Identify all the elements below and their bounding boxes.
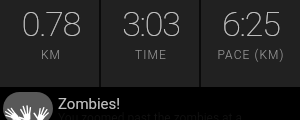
- staticText: Zombies!: [58, 95, 121, 113]
- button[interactable]: 3:03: [101, 0, 201, 87]
- staticText: TIME: [101, 48, 201, 62]
- staticText: KM: [1, 48, 101, 62]
- staticText: You zoomed past the zombies at a: [58, 111, 243, 120]
- button[interactable]: 6:25: [201, 0, 300, 87]
- button[interactable]: 0.78: [1, 0, 101, 87]
- button[interactable]: Zombies!: [0, 87, 300, 120]
- staticText: 0.78: [1, 4, 101, 44]
- staticText: 6:25: [201, 4, 300, 44]
- staticText: PACE (KM): [201, 48, 300, 62]
- staticText: 3:03: [101, 4, 201, 44]
